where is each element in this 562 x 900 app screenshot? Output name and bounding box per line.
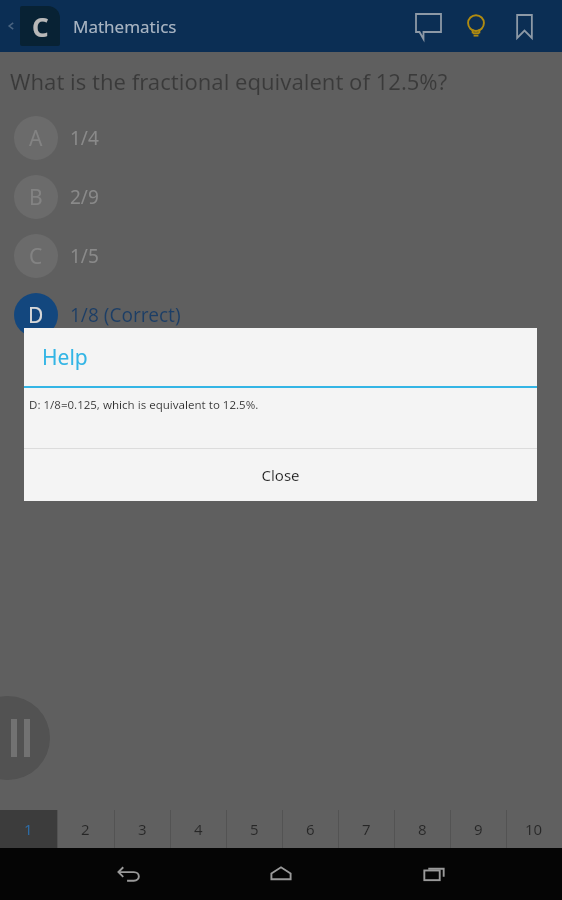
button[interactable]: Bookmark	[500, 2, 548, 50]
staticText: B	[29, 183, 43, 212]
staticText: 9	[474, 819, 483, 839]
button[interactable]: 4	[170, 810, 226, 848]
staticText: 4	[194, 819, 203, 839]
staticText: C	[29, 242, 43, 271]
staticText: Mathematics	[73, 15, 177, 38]
button[interactable]: D	[0, 285, 562, 344]
button[interactable]: 3	[114, 810, 170, 848]
staticText: 3	[138, 819, 147, 839]
button[interactable]: Pause	[0, 696, 50, 780]
button[interactable]: Hint	[452, 2, 500, 50]
staticText: 8	[418, 819, 427, 839]
staticText: D: 1/8=0.125, which is equivalent to 12.…	[29, 397, 259, 413]
button[interactable]: 1	[0, 810, 57, 848]
staticText: What is the fractional equivalent of 12.…	[10, 66, 448, 96]
staticText: 5	[250, 819, 259, 839]
staticText: 1/4	[70, 125, 99, 151]
staticText: Help	[42, 343, 88, 372]
staticText: 2/9	[70, 184, 99, 210]
button[interactable]: 5	[226, 810, 282, 848]
button[interactable]: 7	[338, 810, 394, 848]
button[interactable]: Close	[24, 449, 537, 501]
button[interactable]: C	[0, 226, 562, 285]
button[interactable]: 6	[282, 810, 338, 848]
button[interactable]: Back	[2, 0, 20, 52]
button[interactable]: B	[0, 167, 562, 226]
staticText: D	[28, 301, 44, 330]
staticText: 6	[306, 819, 315, 839]
button[interactable]: Comments	[404, 2, 452, 50]
staticText: Close	[261, 465, 300, 485]
button[interactable]: Home	[257, 850, 305, 898]
button[interactable]: A	[0, 108, 562, 167]
staticText: C	[32, 9, 49, 44]
staticText: A	[29, 124, 43, 153]
staticText: 10	[525, 819, 543, 839]
button[interactable]: 10	[506, 810, 562, 848]
button[interactable]: 2	[57, 810, 114, 848]
staticText: 7	[362, 819, 371, 839]
staticText: 2	[81, 819, 90, 839]
button[interactable]: 9	[450, 810, 506, 848]
staticText: 1/8 (Correct)	[70, 302, 181, 328]
button[interactable]: Recent apps	[410, 850, 458, 898]
button[interactable]: Back	[105, 850, 153, 898]
staticText: 1/5	[70, 243, 99, 269]
button[interactable]: 8	[394, 810, 450, 848]
staticText: 1	[24, 819, 33, 839]
